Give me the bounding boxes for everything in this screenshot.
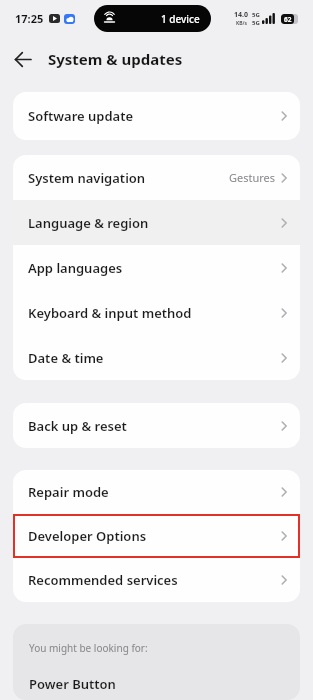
- button[interactable]: Back up & reset: [13, 403, 300, 448]
- staticText: KB/s: [236, 20, 247, 27]
- button[interactable]: Software update: [13, 92, 300, 140]
- button[interactable]: Power Button: [13, 668, 300, 700]
- button[interactable]: Keyboard & input method: [13, 290, 300, 335]
- staticText: Language & region: [28, 214, 149, 232]
- button[interactable]: App languages: [13, 245, 300, 290]
- staticText: System navigation: [28, 169, 146, 187]
- button[interactable]: Recommended services: [13, 558, 300, 602]
- staticText: Repair mode: [28, 483, 109, 501]
- staticText: Developer Options: [28, 527, 147, 545]
- button[interactable]: [15, 44, 45, 74]
- staticText: Date & time: [28, 349, 104, 367]
- staticText: Keyboard & input method: [28, 304, 192, 322]
- staticText: Recommended services: [28, 571, 178, 589]
- button[interactable]: Developer Options: [13, 514, 300, 558]
- staticText: 62: [284, 15, 292, 24]
- staticText: You might be looking for:: [29, 641, 148, 655]
- staticText: Software update: [28, 107, 134, 125]
- button[interactable]: Language & region: [13, 200, 300, 245]
- staticText: Power Button: [29, 675, 116, 693]
- staticText: Back up & reset: [28, 417, 127, 435]
- staticText: 1 device: [161, 12, 200, 26]
- staticText: 5G: [252, 19, 260, 27]
- staticText: App languages: [28, 259, 123, 277]
- staticText: 5G: [252, 11, 260, 19]
- button[interactable]: System navigation: [13, 155, 300, 200]
- staticText: 17:25: [15, 11, 44, 26]
- staticText: System & updates: [48, 49, 183, 69]
- staticText: 14.0: [234, 10, 248, 20]
- staticText: Gestures: [229, 170, 276, 185]
- button[interactable]: Date & time: [13, 335, 300, 380]
- button[interactable]: Repair mode: [13, 470, 300, 514]
